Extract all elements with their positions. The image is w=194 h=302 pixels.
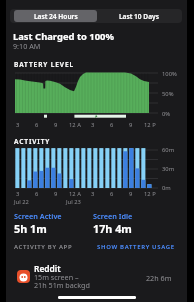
staticText: Screen Idle [93,211,133,221]
staticText: 12 A [69,190,81,198]
staticText: 0% [162,110,171,118]
staticText: 21h 51m backgd [34,280,90,290]
staticText: 30m [162,165,175,173]
staticText: Screen Active [14,211,62,221]
staticText: Jul 23 [66,198,81,206]
staticText: 12 P [144,121,156,129]
staticText: ACTIVITY [14,137,51,146]
staticText: 3 [16,121,20,129]
staticText: 6 [35,121,39,129]
staticText: 3 [91,190,95,198]
button[interactable]: Reddit [8,260,187,296]
staticText: 15m screen – [34,272,79,282]
staticText: SHOW BATTERY USAGE [97,243,175,251]
staticText: 22h 6m [146,273,172,283]
button[interactable]: SHOW BATTERY USAGE [96,242,176,252]
staticText: 50% [162,90,174,98]
staticText: 60m [162,146,175,154]
staticText: 0m [162,184,171,192]
staticText: 6 [35,190,39,198]
staticText: 9 [129,190,133,198]
staticText: 12 A [69,121,81,129]
staticText: 6 [110,190,114,198]
staticText: 12 P [144,190,156,198]
staticText: 9:10 AM [13,41,41,51]
staticText: 9 [54,190,58,198]
staticText: 3 [16,190,20,198]
staticText: Last 24 Hours [34,12,78,21]
staticText: Jul 22 [14,198,29,206]
button[interactable]: Last 24 Hours [14,10,97,22]
staticText: BATTERY LEVEL [14,60,74,69]
button[interactable]: Last 10 Days [97,10,180,22]
staticText: 9 [129,121,133,129]
staticText: ACTIVITY BY APP [14,243,73,251]
staticText: 17h 4m [93,221,132,236]
staticText: Reddit [34,263,61,274]
staticText: Last 10 Days [119,12,159,21]
staticText: 100% [162,70,177,78]
staticText: 5h 1m [14,221,47,236]
staticText: 3 [91,121,95,129]
staticText: 9 [54,121,58,129]
staticText: 6 [110,121,114,129]
staticText: Last Charged to 100% [13,30,114,43]
